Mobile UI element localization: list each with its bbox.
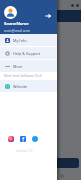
button[interactable]: Instagram: [8, 136, 14, 142]
staticText: Help & Support: [13, 51, 41, 56]
staticText: More from Software Tech: [4, 74, 42, 78]
staticText: More: [13, 64, 23, 69]
button[interactable]: Close navigation drawer: [43, 11, 52, 20]
button[interactable]: [2, 158, 79, 168]
button[interactable]: Help & Support: [0, 47, 57, 59]
staticText: user@mail.com: [4, 28, 31, 33]
staticText: version 1.0: [16, 149, 33, 153]
button[interactable]: Website: [0, 80, 57, 92]
staticText: SoaneName: [4, 21, 29, 27]
staticText: My Info: [13, 38, 27, 43]
button[interactable]: My Info: [0, 34, 57, 46]
button[interactable]: More: [0, 60, 57, 72]
staticText: Website: [13, 84, 28, 89]
button[interactable]: Twitter: [32, 136, 38, 142]
button[interactable]: Facebook: [20, 136, 26, 142]
